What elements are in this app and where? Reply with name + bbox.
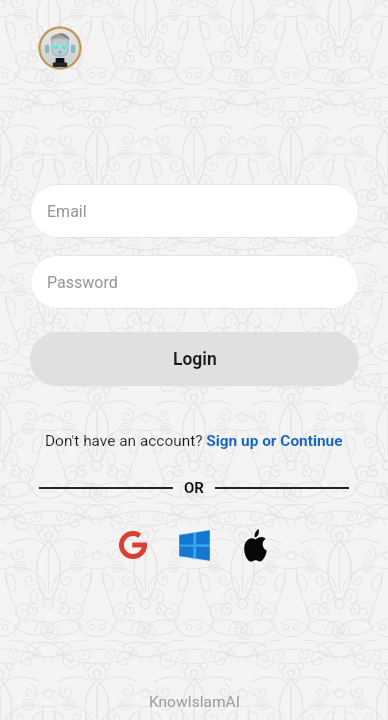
button[interactable]: Sign in with Google bbox=[110, 522, 156, 568]
staticText: Don't have an account? Sign up or Contin… bbox=[45, 432, 343, 450]
staticText: Login bbox=[173, 349, 217, 370]
button[interactable]: Sign in with Apple bbox=[232, 522, 278, 568]
staticText: Email bbox=[47, 202, 87, 221]
button[interactable]: Email bbox=[30, 184, 359, 238]
button[interactable]: Sign in with Microsoft bbox=[171, 522, 217, 568]
button[interactable]: Profile bbox=[38, 26, 82, 70]
staticText: OR bbox=[184, 479, 204, 497]
button[interactable]: Login bbox=[30, 332, 359, 386]
button[interactable]: Password bbox=[30, 255, 359, 309]
staticText: KnowIslamAI bbox=[149, 693, 240, 711]
button[interactable]: Don't have an account? Sign up or Contin… bbox=[41, 430, 347, 452]
staticText: Password bbox=[47, 273, 118, 292]
